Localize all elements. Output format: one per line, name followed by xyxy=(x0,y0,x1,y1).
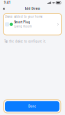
staticText: Done xyxy=(28,105,36,108)
staticText: Smart Plug xyxy=(14,20,30,24)
button[interactable]: Done xyxy=(5,101,59,112)
staticText: Tap the device to configure it. xyxy=(4,40,46,43)
button[interactable]: Smart Plug xyxy=(3,18,62,28)
staticText: 9:41 xyxy=(4,1,11,4)
staticText: Living Room xyxy=(14,25,31,28)
button[interactable]: Close xyxy=(1,6,6,11)
staticText: Device added to your home xyxy=(5,15,43,18)
staticText: Add Device xyxy=(24,7,40,10)
